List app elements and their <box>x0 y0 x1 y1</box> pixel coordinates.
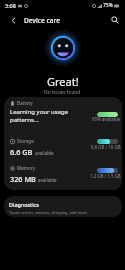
staticText: Battery <box>17 100 33 106</box>
staticText: 6.6 GB / 16 GB <box>91 144 121 150</box>
staticText: Great! <box>47 74 79 89</box>
staticText: 1.2 GB / 1.5 GB <box>90 173 121 179</box>
button[interactable]: Diagnostics <box>4 196 122 217</box>
staticText: 3:08 <box>5 2 16 9</box>
button[interactable]: Back <box>6 13 20 27</box>
staticText: available <box>38 177 57 183</box>
staticText: 95% available <box>92 116 121 122</box>
staticText: Storage <box>17 138 34 144</box>
staticText: 326 MB <box>10 174 36 184</box>
staticText: Diagnostics <box>9 201 39 208</box>
staticText: Device care <box>24 16 60 25</box>
button[interactable]: Search <box>108 13 122 27</box>
staticText: Touch screen, sensors, charging, and mor… <box>9 210 88 215</box>
staticText: Learning your usage patterns... <box>10 108 69 124</box>
staticText: No issues found <box>44 89 81 96</box>
staticText: 75% <box>103 2 113 9</box>
button[interactable]: Battery <box>4 97 122 190</box>
staticText: available <box>35 150 54 156</box>
staticText: Memory <box>17 165 36 171</box>
staticText: 6.6 GB <box>10 147 33 157</box>
